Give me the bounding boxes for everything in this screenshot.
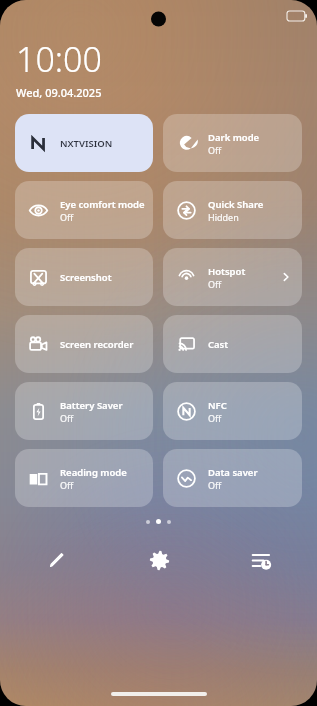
staticText: Off <box>208 479 222 491</box>
button[interactable]: Cast <box>163 315 302 373</box>
button[interactable]: History <box>239 538 283 582</box>
staticText: Screenshot <box>60 271 112 284</box>
staticText: Reading mode <box>60 466 127 479</box>
staticText: Hotspot <box>208 265 246 278</box>
staticText: Off <box>60 412 74 424</box>
button[interactable]: NXTVISION <box>15 114 153 172</box>
button[interactable]: Dark mode <box>163 114 302 172</box>
button[interactable]: Eye comfort mode <box>15 181 153 239</box>
button[interactable]: Data saver <box>163 449 302 507</box>
staticText: Battery Saver <box>60 399 123 412</box>
staticText: Screen recorder <box>60 338 134 351</box>
staticText: 10:00 <box>16 36 102 82</box>
staticText: Eye comfort mode <box>60 198 145 211</box>
staticText: Off <box>208 144 222 156</box>
staticText: NXTVISION <box>60 137 113 150</box>
staticText: Quick Share <box>208 198 264 211</box>
button[interactable]: Screen recorder <box>15 315 153 373</box>
button[interactable]: Edit <box>34 538 78 582</box>
staticText: Off <box>208 278 222 290</box>
staticText: Off <box>60 211 74 223</box>
staticText: Wed, 09.04.2025 <box>16 85 102 100</box>
button[interactable]: Screenshot <box>15 248 153 306</box>
staticText: NFC <box>208 399 227 412</box>
staticText: Data saver <box>208 466 258 479</box>
button[interactable]: NFC <box>163 382 302 440</box>
button[interactable]: Quick Share <box>163 181 302 239</box>
button[interactable]: Settings <box>137 538 181 582</box>
staticText: Hidden <box>208 211 239 223</box>
staticText: Cast <box>208 338 229 351</box>
staticText: Off <box>208 412 222 424</box>
button[interactable]: Hotspot <box>163 248 302 306</box>
button[interactable]: Battery Saver <box>15 382 153 440</box>
staticText: Dark mode <box>208 131 260 144</box>
button[interactable]: Reading mode <box>15 449 153 507</box>
staticText: Off <box>60 479 74 491</box>
